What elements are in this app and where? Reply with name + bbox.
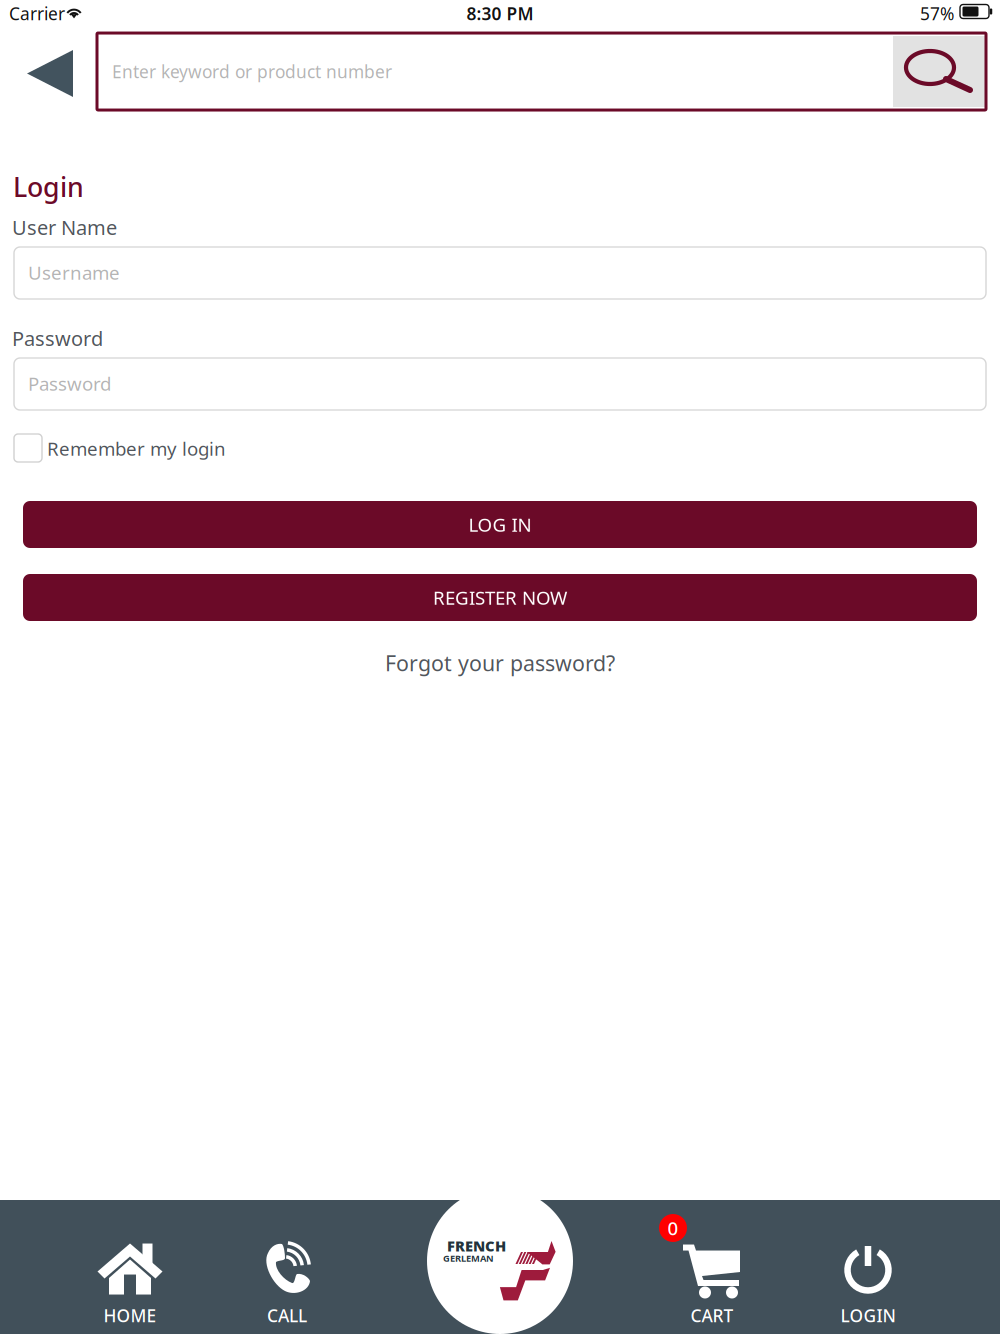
staticText: Password bbox=[12, 325, 103, 352]
staticText: Carrier bbox=[9, 2, 65, 25]
button[interactable]: Forgot your password? bbox=[350, 645, 650, 681]
button[interactable]: LOG IN bbox=[23, 501, 977, 548]
staticText: FRENCH bbox=[447, 1236, 506, 1255]
button[interactable]: HOME bbox=[50, 1200, 210, 1334]
staticText: 8:30 PM bbox=[466, 2, 533, 25]
staticText: Login bbox=[13, 169, 84, 204]
button[interactable]: Back bbox=[0, 31, 97, 134]
button[interactable]: CALL bbox=[207, 1200, 367, 1334]
staticText: 57% bbox=[920, 2, 954, 25]
staticText: User Name bbox=[12, 214, 117, 241]
staticText: 0 bbox=[667, 1216, 678, 1240]
button[interactable]: CART bbox=[632, 1200, 792, 1334]
staticText: CART bbox=[690, 1304, 733, 1327]
button[interactable]: REGISTER NOW bbox=[23, 574, 977, 621]
button[interactable]: Search bbox=[893, 36, 986, 107]
staticText: Remember my login bbox=[47, 436, 226, 461]
staticText: CALL bbox=[267, 1304, 307, 1327]
staticText: Username bbox=[28, 260, 120, 285]
staticText: HOME bbox=[103, 1304, 156, 1327]
staticText: LOG IN bbox=[468, 512, 531, 537]
staticText: Password bbox=[28, 371, 111, 396]
staticText: REGISTER NOW bbox=[433, 585, 567, 610]
staticText: GERLEMAN bbox=[443, 1252, 494, 1264]
staticText: LOGIN bbox=[840, 1304, 895, 1327]
staticText: Forgot your password? bbox=[385, 649, 615, 677]
staticText: Enter keyword or product number bbox=[112, 60, 392, 83]
button[interactable]: Remember my login bbox=[14, 433, 304, 463]
button[interactable]: LOGIN bbox=[788, 1200, 948, 1334]
